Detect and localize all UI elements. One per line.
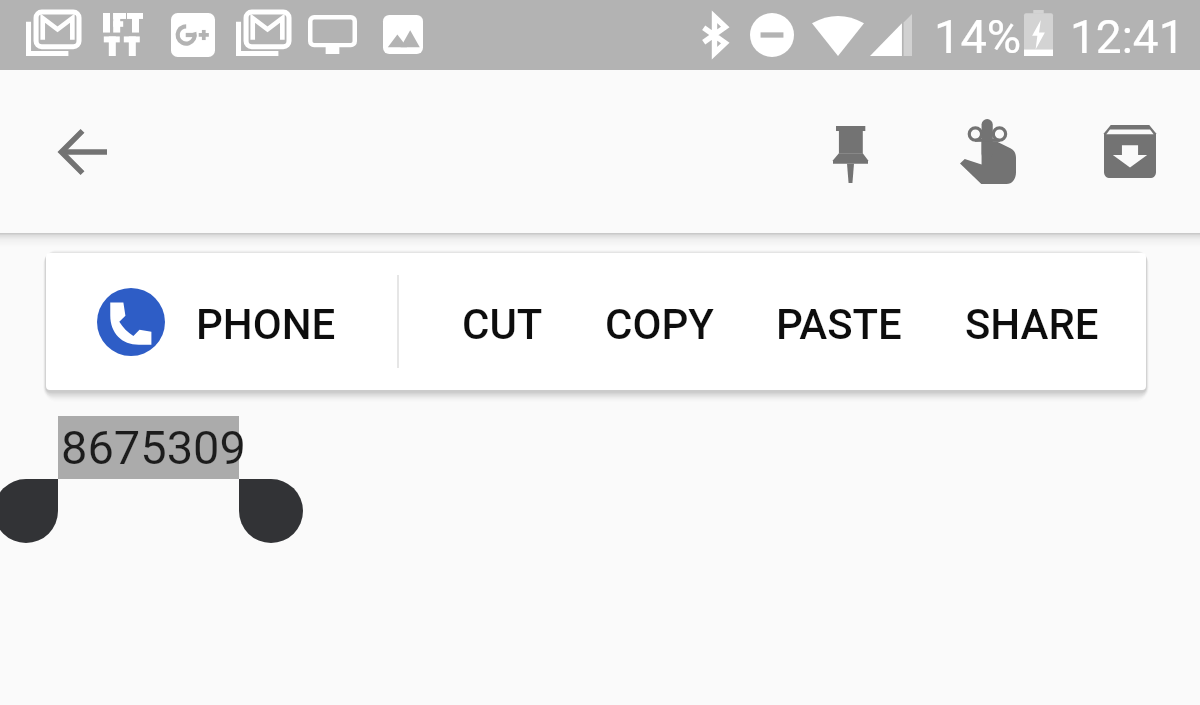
staticText: PHONE	[196, 300, 336, 349]
staticText: SHARE	[965, 300, 1099, 349]
button[interactable]: SHARE	[933, 253, 1131, 390]
button[interactable]: PHONE	[46, 253, 397, 390]
button[interactable]: Pin	[803, 107, 897, 201]
staticText: CUT	[462, 300, 543, 349]
staticText: PASTE	[776, 300, 902, 349]
button[interactable]: COPY	[574, 253, 745, 390]
button[interactable]: PASTE	[745, 253, 933, 390]
staticText: 12:41	[1070, 10, 1185, 64]
button[interactable]: CUT	[431, 253, 574, 390]
button[interactable]: Selection start handle	[0, 479, 58, 543]
staticText: COPY	[605, 300, 714, 349]
staticText: 14%	[934, 9, 1022, 64]
button[interactable]: Navigate up	[36, 105, 130, 199]
button[interactable]: Selection end handle	[239, 479, 303, 543]
button[interactable]: Reminder	[941, 104, 1035, 198]
staticText: 8675309	[61, 420, 246, 475]
button[interactable]: Archive	[1083, 104, 1177, 198]
